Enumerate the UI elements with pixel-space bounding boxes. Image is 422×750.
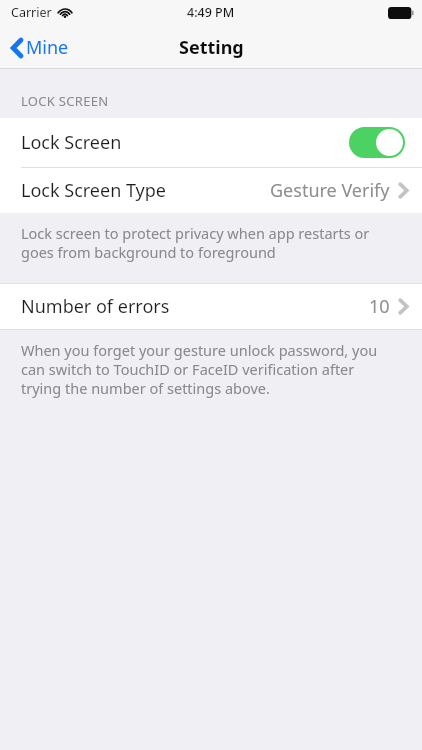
staticText: Lock screen to protect privacy when app …: [21, 223, 392, 262]
staticText: Gesture Verify: [270, 178, 390, 203]
staticText: Lock Screen: [21, 130, 122, 155]
staticText: Setting: [179, 35, 244, 60]
staticText: When you forget your gesture unlock pass…: [21, 340, 392, 398]
staticText: 10: [369, 294, 390, 319]
staticText: Number of errors: [21, 294, 170, 319]
staticText: LOCK SCREEN: [21, 92, 109, 110]
button[interactable]: Lock Screen toggle: [349, 127, 405, 158]
staticText: Mine: [26, 35, 69, 60]
staticText: Lock Screen Type: [21, 178, 167, 203]
staticText: Carrier: [11, 4, 52, 21]
button[interactable]: Mine: [0, 29, 79, 66]
button[interactable]: Number of errors: [0, 284, 422, 329]
button[interactable]: Lock Screen Type: [0, 168, 422, 213]
staticText: 4:49 PM: [187, 4, 235, 21]
button[interactable]: Lock Screen: [0, 118, 422, 167]
